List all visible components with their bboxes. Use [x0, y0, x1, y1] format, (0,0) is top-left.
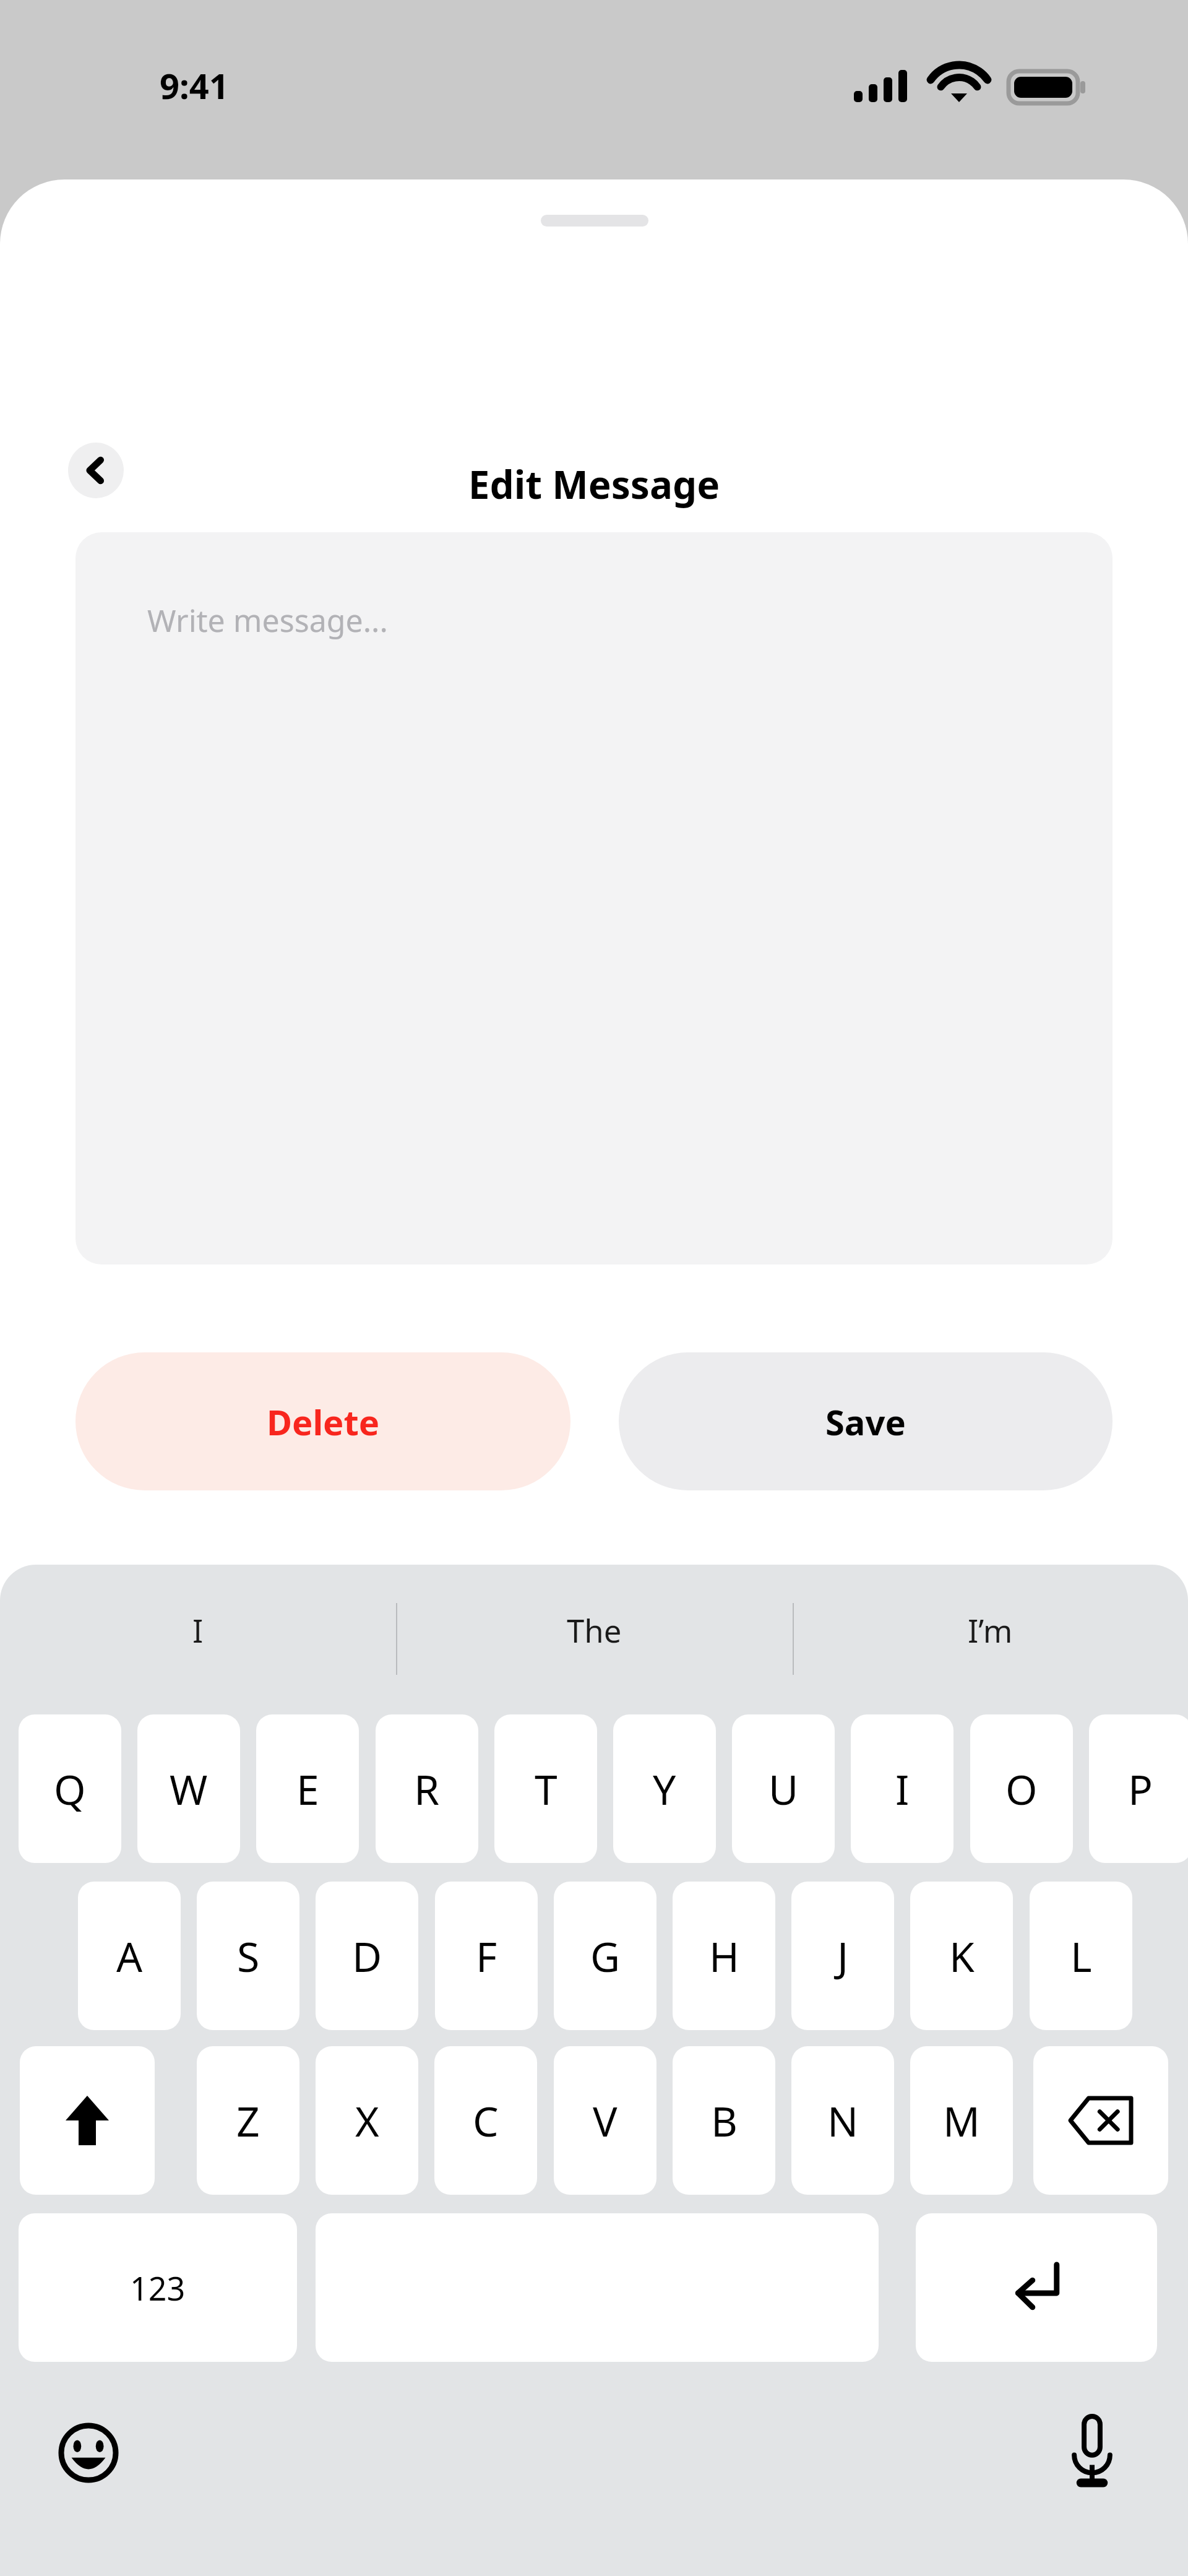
button[interactable]: 123: [19, 2213, 297, 2362]
staticText: 9:41: [160, 62, 229, 109]
staticText: 123: [130, 2266, 186, 2310]
staticText: N: [827, 2093, 859, 2148]
staticText: Delete: [267, 1398, 380, 1445]
staticText: J: [837, 1928, 849, 1984]
button[interactable]: Shift: [20, 2046, 155, 2195]
button[interactable]: N: [791, 2046, 894, 2195]
button[interactable]: K: [910, 1882, 1013, 2030]
button[interactable]: L: [1030, 1882, 1132, 2030]
staticText: P: [1128, 1761, 1153, 1817]
staticText: H: [709, 1928, 739, 1984]
button[interactable]: J: [791, 1882, 894, 2030]
button[interactable]: H: [673, 1882, 775, 2030]
button[interactable]: A: [78, 1882, 181, 2030]
button[interactable]: Delete: [75, 1352, 570, 1490]
staticText: I: [895, 1761, 910, 1817]
staticText: I: [192, 1609, 204, 1651]
staticText: A: [116, 1928, 143, 1984]
staticText: V: [593, 2093, 618, 2148]
button[interactable]: G: [554, 1882, 656, 2030]
staticText: K: [949, 1928, 975, 1984]
staticText: M: [943, 2093, 980, 2148]
staticText: Y: [653, 1761, 676, 1817]
staticText: Q: [54, 1761, 86, 1817]
button[interactable]: W: [137, 1714, 240, 1863]
staticText: E: [296, 1761, 319, 1817]
staticText: Save: [825, 1398, 906, 1445]
staticText: G: [590, 1928, 621, 1984]
staticText: Z: [236, 2093, 260, 2148]
staticText: C: [473, 2093, 499, 2148]
staticText: The: [567, 1609, 622, 1651]
staticText: O: [1005, 1761, 1038, 1817]
staticText: W: [170, 1761, 208, 1817]
staticText: Write message...: [147, 599, 388, 641]
button[interactable]: T: [494, 1714, 597, 1863]
button[interactable]: I: [74, 1589, 322, 1670]
button[interactable]: E: [256, 1714, 359, 1863]
staticText: L: [1070, 1928, 1092, 1984]
button[interactable]: U: [732, 1714, 835, 1863]
staticText: X: [355, 2093, 379, 2148]
button[interactable]: S: [197, 1882, 299, 2030]
button[interactable]: V: [554, 2046, 656, 2195]
button[interactable]: I: [851, 1714, 953, 1863]
staticText: S: [237, 1928, 260, 1984]
button[interactable]: Emoji: [48, 2413, 129, 2493]
staticText: I’m: [968, 1609, 1013, 1651]
button[interactable]: Q: [19, 1714, 121, 1863]
button[interactable]: M: [910, 2046, 1013, 2195]
staticText: Edit Message: [0, 458, 1188, 510]
staticText: F: [476, 1928, 497, 1984]
button[interactable]: B: [673, 2046, 775, 2195]
staticText: T: [535, 1761, 557, 1817]
staticText: R: [414, 1761, 440, 1817]
button[interactable]: Z: [197, 2046, 299, 2195]
button[interactable]: R: [376, 1714, 478, 1863]
staticText: D: [352, 1928, 382, 1984]
button[interactable]: X: [316, 2046, 418, 2195]
button[interactable]: O: [970, 1714, 1073, 1863]
button[interactable]: C: [434, 2046, 537, 2195]
staticText: Message: [121, 624, 244, 663]
staticText: B: [711, 2093, 738, 2148]
button[interactable]: D: [316, 1882, 418, 2030]
button[interactable]: P: [1089, 1714, 1188, 1863]
button[interactable]: Y: [613, 1714, 716, 1863]
button[interactable]: Return: [916, 2213, 1157, 2362]
button[interactable]: Backspace: [1033, 2046, 1168, 2195]
button[interactable]: Save: [619, 1352, 1113, 1490]
button[interactable]: Back: [68, 443, 124, 498]
staticText: U: [768, 1761, 799, 1817]
button[interactable]: I’m: [866, 1589, 1114, 1670]
button[interactable]: Dictate: [1052, 2408, 1132, 2494]
button[interactable]: The: [470, 1589, 718, 1670]
button[interactable]: F: [435, 1882, 538, 2030]
